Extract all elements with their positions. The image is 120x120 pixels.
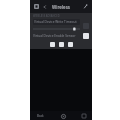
button[interactable]: Option 2 [58, 41, 65, 48]
staticText: Virtual Device Write Timeout [34, 20, 77, 24]
button[interactable]: Enable sensor checkbox [82, 32, 89, 39]
button[interactable]: Option 1 [49, 41, 56, 48]
button[interactable]: Recents [80, 112, 88, 120]
button[interactable]: Timeout slider [33, 27, 80, 31]
button[interactable]: Option 3 [67, 41, 74, 48]
button[interactable]: Back [34, 112, 46, 119]
staticText: Virtual Device Enable Sensor on [33, 34, 80, 38]
staticText: Back [37, 114, 44, 118]
staticText: Wireless [52, 4, 81, 10]
button[interactable]: Virtual Device Enable Sensor on [33, 31, 89, 40]
button[interactable]: Toggle option [82, 22, 89, 29]
button[interactable]: Back [41, 3, 49, 11]
button[interactable]: App icon [32, 2, 41, 11]
staticText: WIRELESS ADVANCED [33, 14, 60, 18]
button[interactable]: Home [59, 112, 67, 120]
button[interactable]: Settings [81, 2, 90, 11]
button[interactable]: Virtual Device Write Timeout [33, 19, 89, 31]
